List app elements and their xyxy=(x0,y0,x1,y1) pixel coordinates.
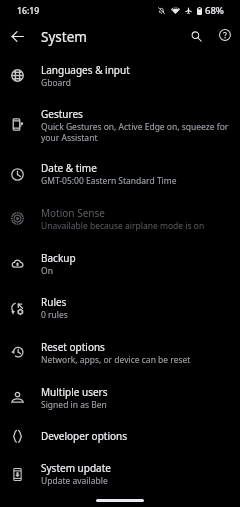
staticText: 16:19 xyxy=(17,5,40,17)
staticText: 68% xyxy=(205,4,224,17)
staticText: Motion Sense xyxy=(41,206,105,220)
button[interactable]: Reset options xyxy=(0,330,240,375)
button[interactable]: System update xyxy=(0,452,240,496)
staticText: Gboard xyxy=(41,77,71,89)
staticText: System xyxy=(41,28,87,46)
button[interactable]: Search xyxy=(183,23,209,49)
staticText: Rules xyxy=(41,295,67,309)
staticText: Unavailable because airplane mode is on xyxy=(41,220,205,232)
staticText: Reset options xyxy=(41,340,105,354)
staticText: Date & time xyxy=(41,161,97,175)
button[interactable]: Motion Sense xyxy=(0,196,240,241)
staticText: Network, apps, or device can be reset xyxy=(41,354,191,366)
button[interactable]: Date & time xyxy=(0,152,240,196)
staticText: Languages & input xyxy=(41,63,130,77)
button[interactable]: Rules xyxy=(0,286,240,330)
button[interactable]: Multiple users xyxy=(0,375,240,420)
button[interactable]: Developer options xyxy=(0,420,240,452)
staticText: Gestures xyxy=(41,107,83,121)
staticText: On xyxy=(41,265,53,277)
staticText: Update available xyxy=(41,475,108,487)
staticText: 0 rules xyxy=(41,309,68,321)
button[interactable]: Languages & input xyxy=(0,54,240,97)
staticText: Backup xyxy=(41,251,76,265)
staticText: Signed in as Ben xyxy=(41,399,107,411)
staticText: System update xyxy=(41,461,111,475)
staticText: GMT-05:00 Eastern Standard Time xyxy=(41,175,177,187)
staticText: Developer options xyxy=(41,429,128,443)
button[interactable]: Help xyxy=(212,22,238,48)
staticText: Quick Gestures on, Active Edge on, squee… xyxy=(41,121,232,143)
button[interactable]: Backup xyxy=(0,241,240,286)
button[interactable]: Gestures xyxy=(0,97,240,152)
button[interactable]: Back xyxy=(5,24,29,48)
staticText: Multiple users xyxy=(41,385,108,399)
